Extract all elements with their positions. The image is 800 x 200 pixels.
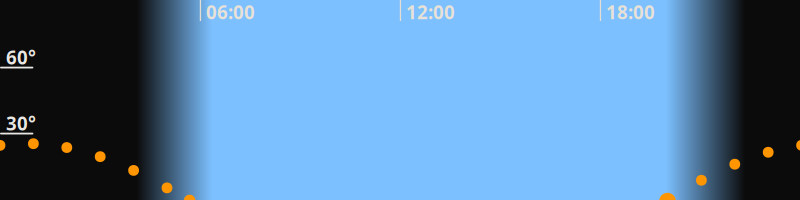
staticText: 18:00 (606, 0, 655, 24)
staticText: 12:00 (406, 0, 455, 24)
staticText: 06:00 (206, 0, 255, 24)
staticText: 30° (6, 111, 36, 136)
staticText: 60° (6, 45, 36, 70)
